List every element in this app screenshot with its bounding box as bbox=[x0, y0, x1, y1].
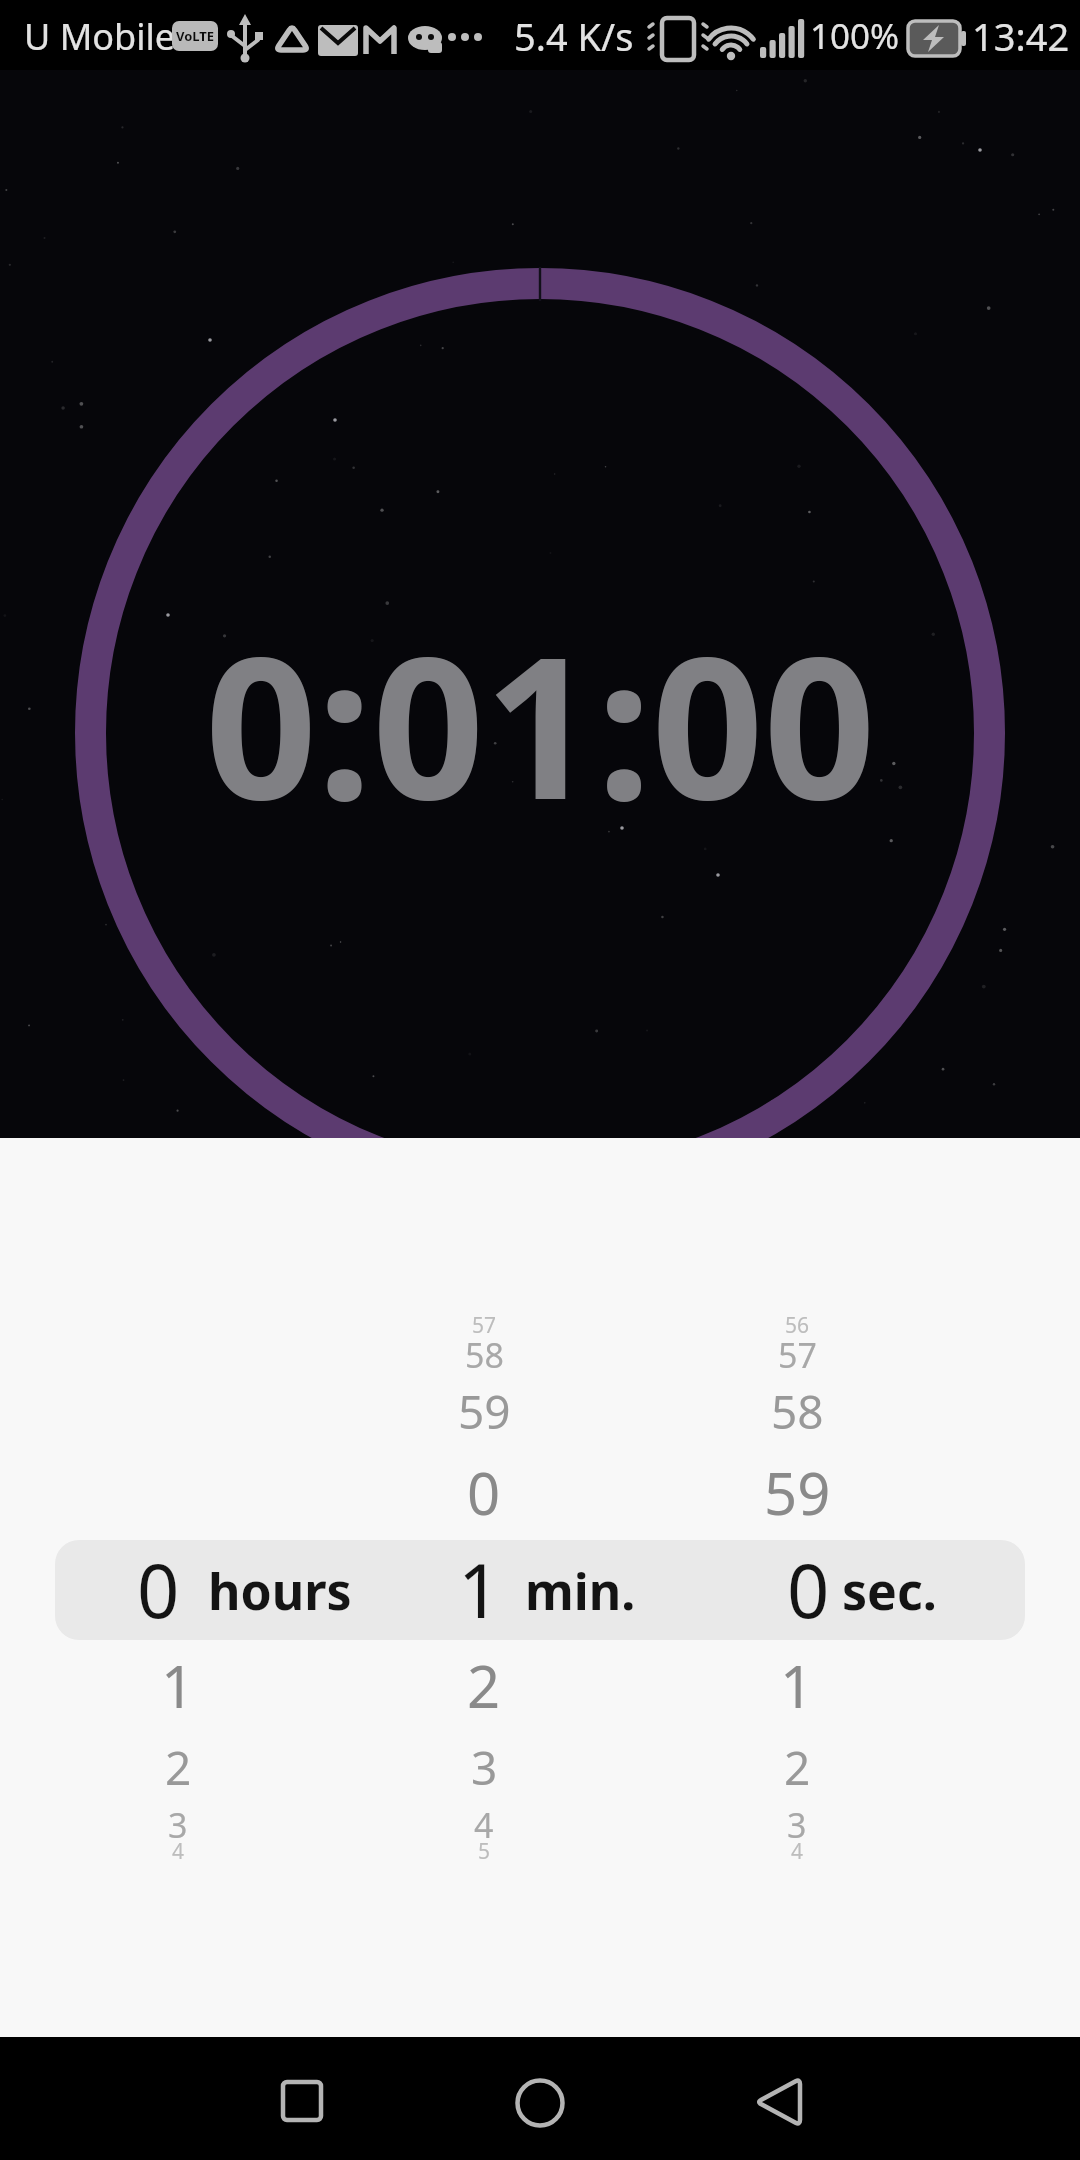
staticText: 57 bbox=[472, 1311, 497, 1340]
staticText: 5 bbox=[478, 1837, 491, 1866]
staticText: 56 bbox=[785, 1311, 810, 1340]
staticText: 0 bbox=[137, 1539, 180, 1640]
staticText: 4 bbox=[791, 1837, 804, 1866]
staticText: 57 bbox=[778, 1332, 817, 1378]
staticText: 4 bbox=[474, 1802, 494, 1848]
staticText: 3 bbox=[471, 1736, 498, 1799]
staticText: sec. bbox=[842, 1557, 937, 1625]
button[interactable] bbox=[232, 2037, 372, 2160]
staticText: 59 bbox=[458, 1380, 511, 1443]
staticText: 2 bbox=[784, 1736, 811, 1799]
button[interactable] bbox=[378, 1540, 700, 1640]
staticText: 2 bbox=[467, 1646, 501, 1725]
staticText: 0 bbox=[787, 1539, 830, 1640]
staticText: 100% bbox=[810, 12, 900, 60]
staticText: 0 bbox=[467, 1453, 501, 1532]
staticText: 5.4 K/s bbox=[514, 10, 634, 62]
button[interactable] bbox=[55, 1540, 378, 1640]
staticText: 59 bbox=[764, 1453, 831, 1532]
staticText: 3 bbox=[168, 1802, 188, 1848]
staticText: 4 bbox=[172, 1837, 185, 1866]
staticText: 13:42 bbox=[972, 10, 1070, 62]
staticText: U Mobile bbox=[24, 12, 176, 61]
staticText: min. bbox=[525, 1557, 636, 1625]
staticText: 2 bbox=[165, 1736, 192, 1799]
staticText: 0:01:00 bbox=[205, 589, 876, 856]
staticText: VoLTE bbox=[176, 27, 215, 45]
staticText: 58 bbox=[465, 1332, 504, 1378]
staticText: 58 bbox=[771, 1380, 824, 1443]
button[interactable] bbox=[710, 2037, 850, 2160]
staticText: 1 bbox=[780, 1646, 814, 1725]
staticText: 3 bbox=[787, 1802, 807, 1848]
staticText: 1 bbox=[458, 1539, 501, 1640]
button[interactable] bbox=[470, 2037, 610, 2160]
button[interactable] bbox=[700, 1540, 1025, 1640]
staticText: 1 bbox=[161, 1646, 195, 1725]
staticText: hours bbox=[208, 1557, 352, 1625]
